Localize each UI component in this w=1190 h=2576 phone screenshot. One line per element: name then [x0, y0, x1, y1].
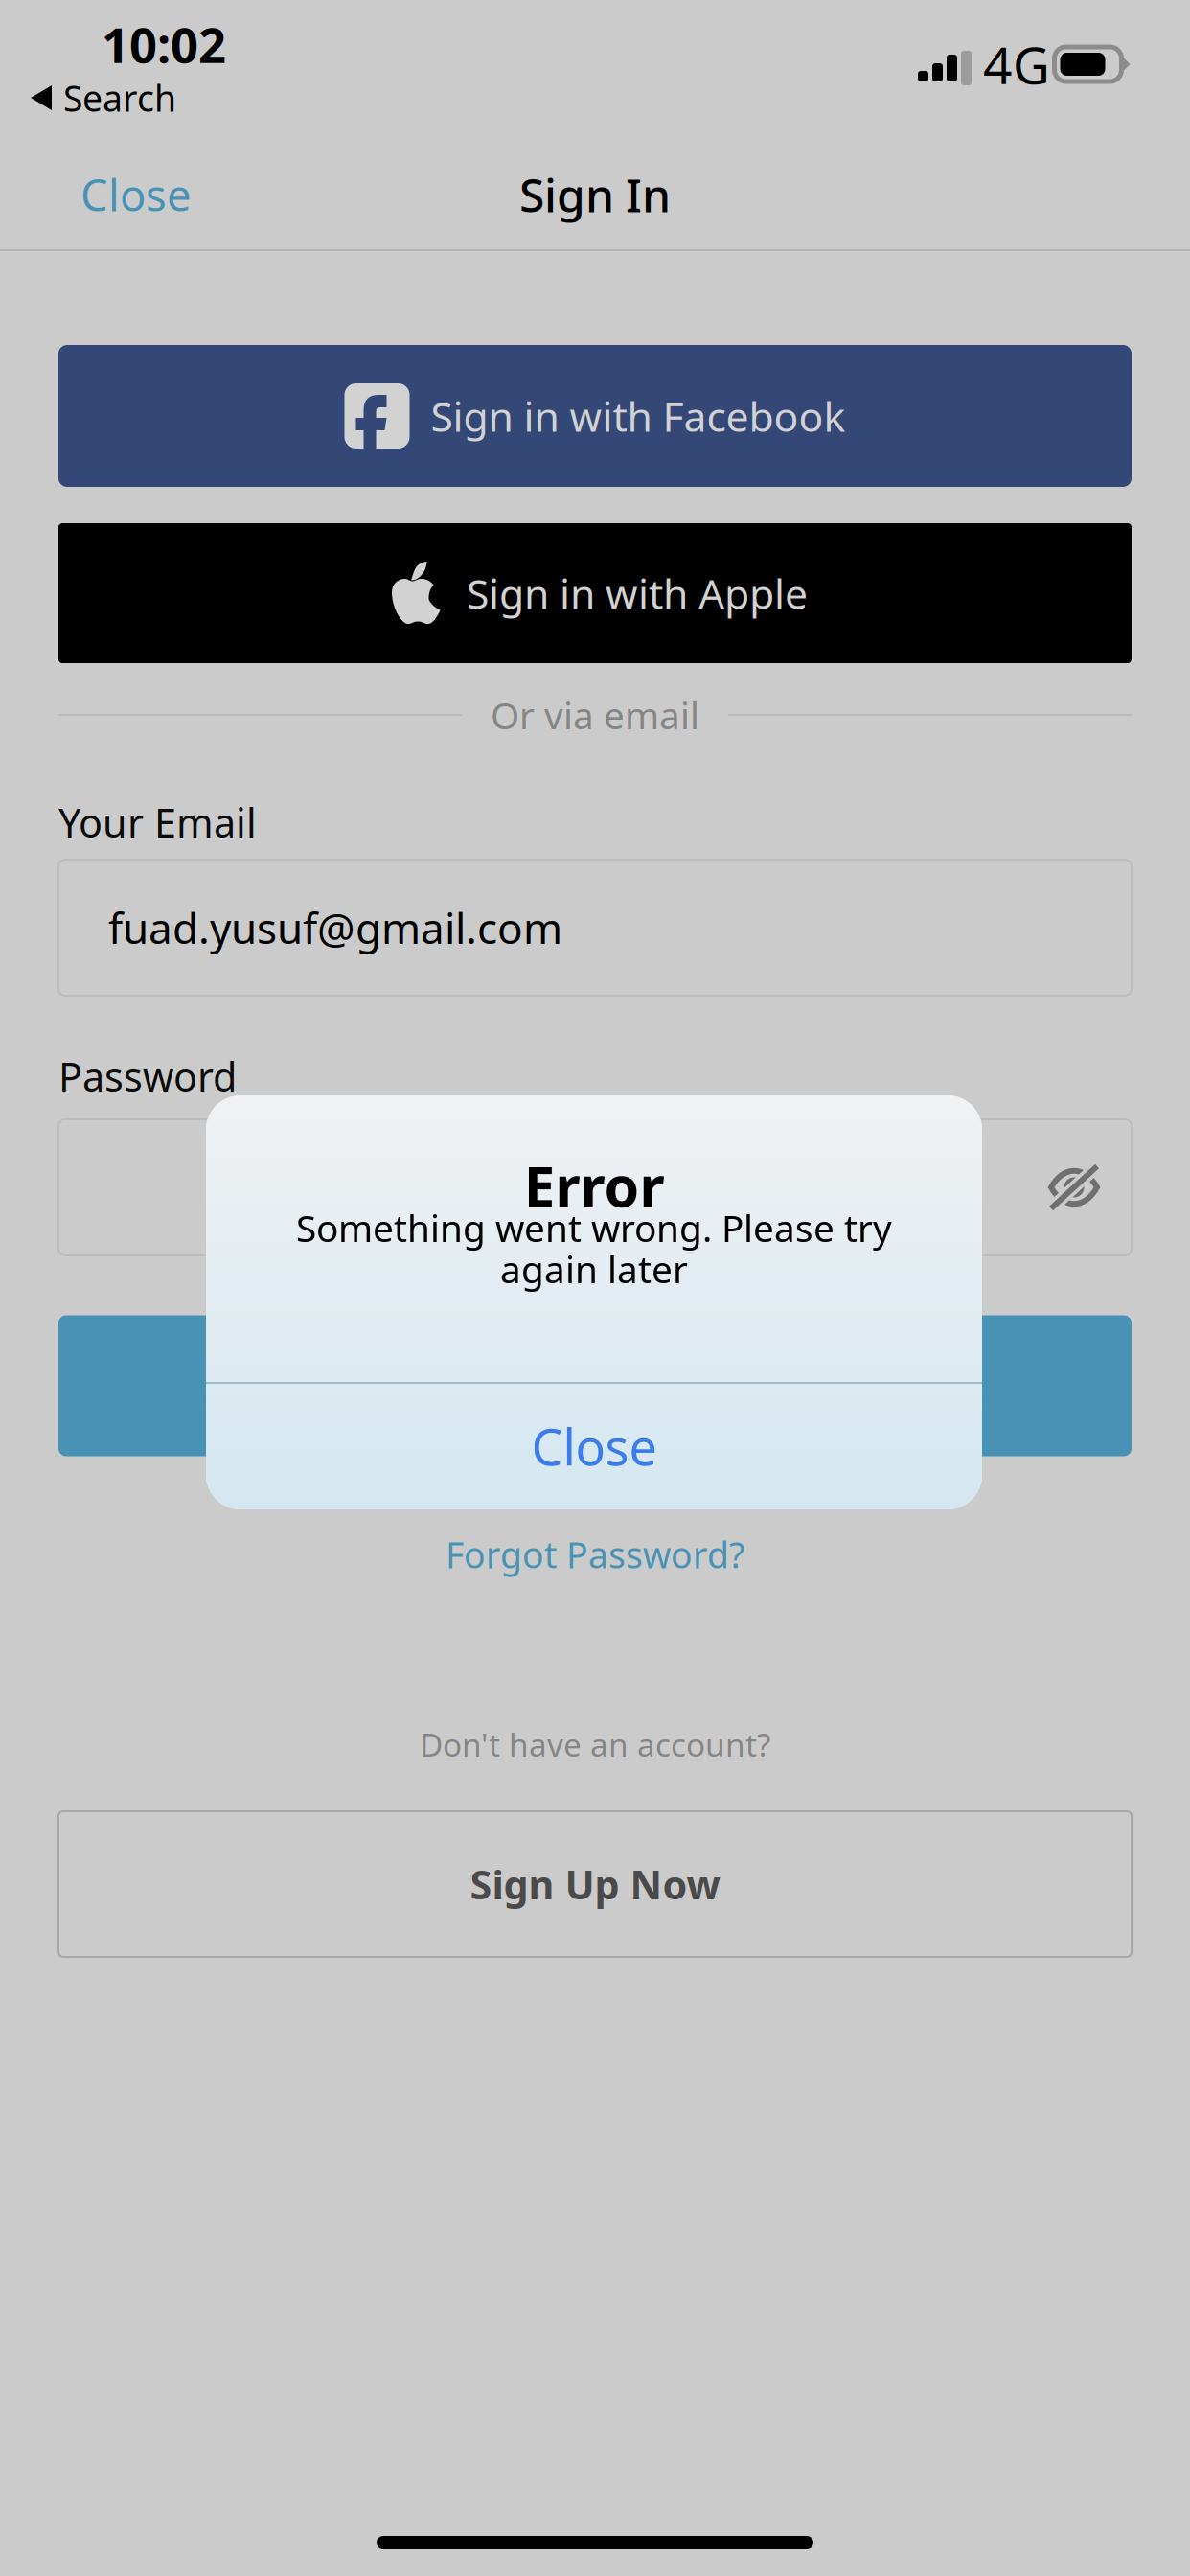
button[interactable]: Sign in with Facebook [58, 345, 1132, 487]
staticText: 4G [983, 30, 1050, 98]
staticText: fuad.yusuf@gmail.com [108, 900, 562, 956]
button[interactable]: Sign In [58, 1315, 1132, 1456]
staticText: Sign In [519, 164, 671, 225]
staticText: Don't have an account? [420, 1723, 770, 1765]
staticText: Sign in with Facebook [431, 389, 846, 443]
staticText: Sign Up Now [470, 1858, 720, 1910]
staticText: Something went wrong. Please try [296, 1203, 892, 1252]
button[interactable]: Sign in with Apple [58, 523, 1132, 663]
staticText: Password [58, 1050, 237, 1103]
staticText: again later [500, 1244, 688, 1293]
staticText: Your Email [58, 796, 257, 849]
staticText: Close [531, 1413, 657, 1479]
staticText: Sign In [517, 1355, 673, 1416]
staticText: Or via email [491, 690, 699, 739]
button[interactable]: Forgot Password? [58, 1516, 1132, 1593]
staticText: Sign in with Apple [467, 566, 808, 620]
staticText: Error [524, 1148, 664, 1223]
staticText: 10:02 [102, 12, 226, 76]
staticText: Search [63, 74, 176, 122]
button[interactable]: Close [0, 142, 272, 247]
button[interactable]: Show password [1017, 1119, 1132, 1255]
button[interactable]: Close [206, 1383, 982, 1509]
staticText: Close [80, 166, 192, 223]
button[interactable]: Sign Up Now [58, 1811, 1132, 1957]
staticText: Forgot Password? [446, 1531, 744, 1578]
